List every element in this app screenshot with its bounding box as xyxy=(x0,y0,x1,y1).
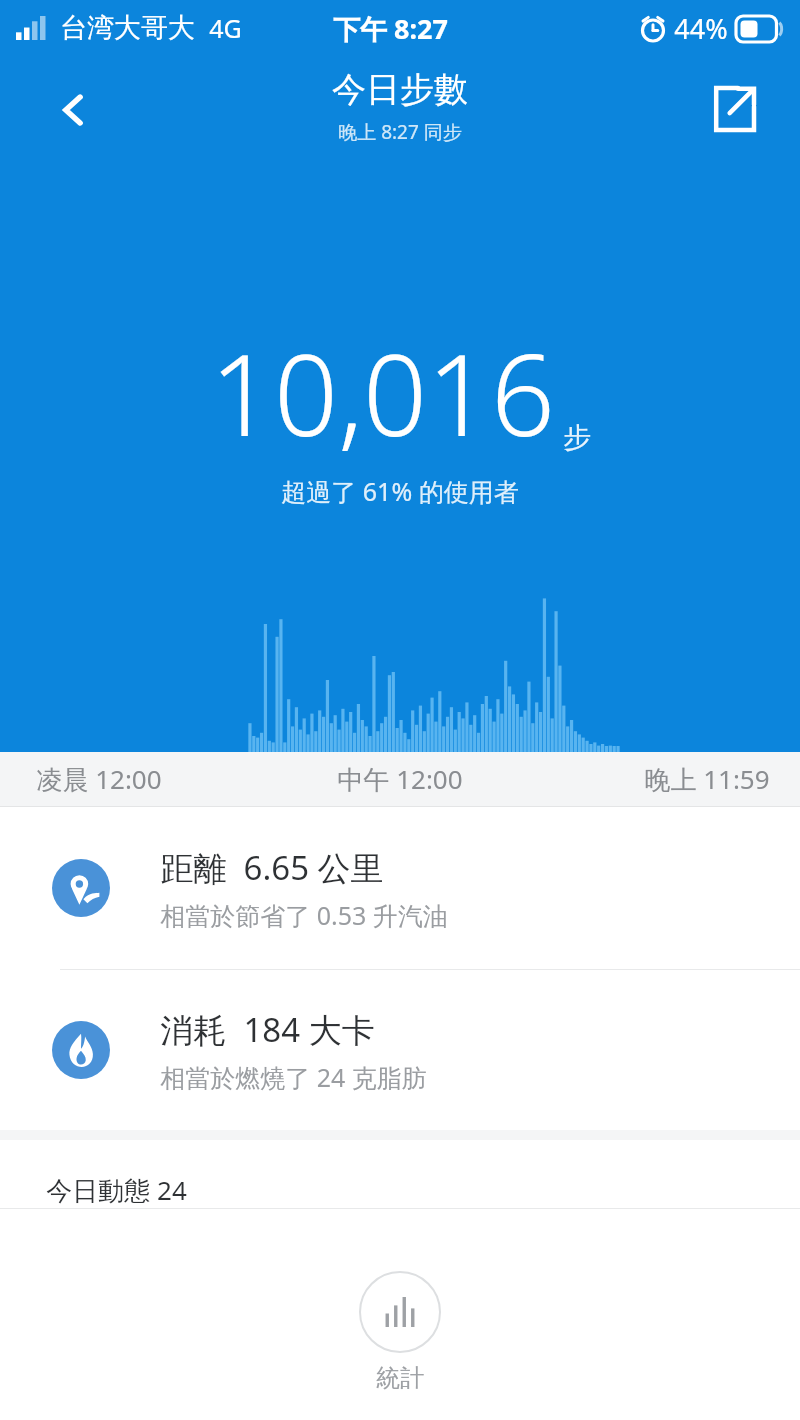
staticText: 晚上 8:27 同步 xyxy=(338,119,462,145)
staticText: 今日步數 xyxy=(332,68,468,111)
button[interactable]: 統計 xyxy=(335,1267,465,1397)
staticText: 中午 12:00 xyxy=(337,761,463,797)
button[interactable]: 消耗 184 大卡 xyxy=(0,970,800,1130)
button[interactable]: Back xyxy=(34,70,114,150)
staticText: 10,016 xyxy=(210,316,555,469)
staticText: 消耗 184 大卡 xyxy=(160,1007,375,1052)
staticText: 4G xyxy=(209,11,242,45)
staticText: 步 xyxy=(563,420,591,455)
staticText: 晚上 11:59 xyxy=(644,761,770,797)
staticText: 相當於燃燒了 24 克脂肪 xyxy=(160,1060,427,1094)
staticText: 44% xyxy=(674,10,728,47)
staticText: 凌晨 12:00 xyxy=(36,761,162,797)
staticText: 統計 xyxy=(376,1363,424,1393)
button[interactable]: Share xyxy=(690,66,776,152)
staticText: 超過了 61% 的使用者 xyxy=(281,474,519,508)
staticText: 距離 6.65 公里 xyxy=(160,845,384,890)
staticText: 下午 8:27 xyxy=(333,10,448,47)
button[interactable]: 距離 6.65 公里 xyxy=(0,807,800,970)
staticText: 相當於節省了 0.53 升汽油 xyxy=(160,898,448,932)
staticText: 台湾大哥大 xyxy=(60,11,195,45)
staticText: 今日動態 24 xyxy=(46,1172,187,1208)
